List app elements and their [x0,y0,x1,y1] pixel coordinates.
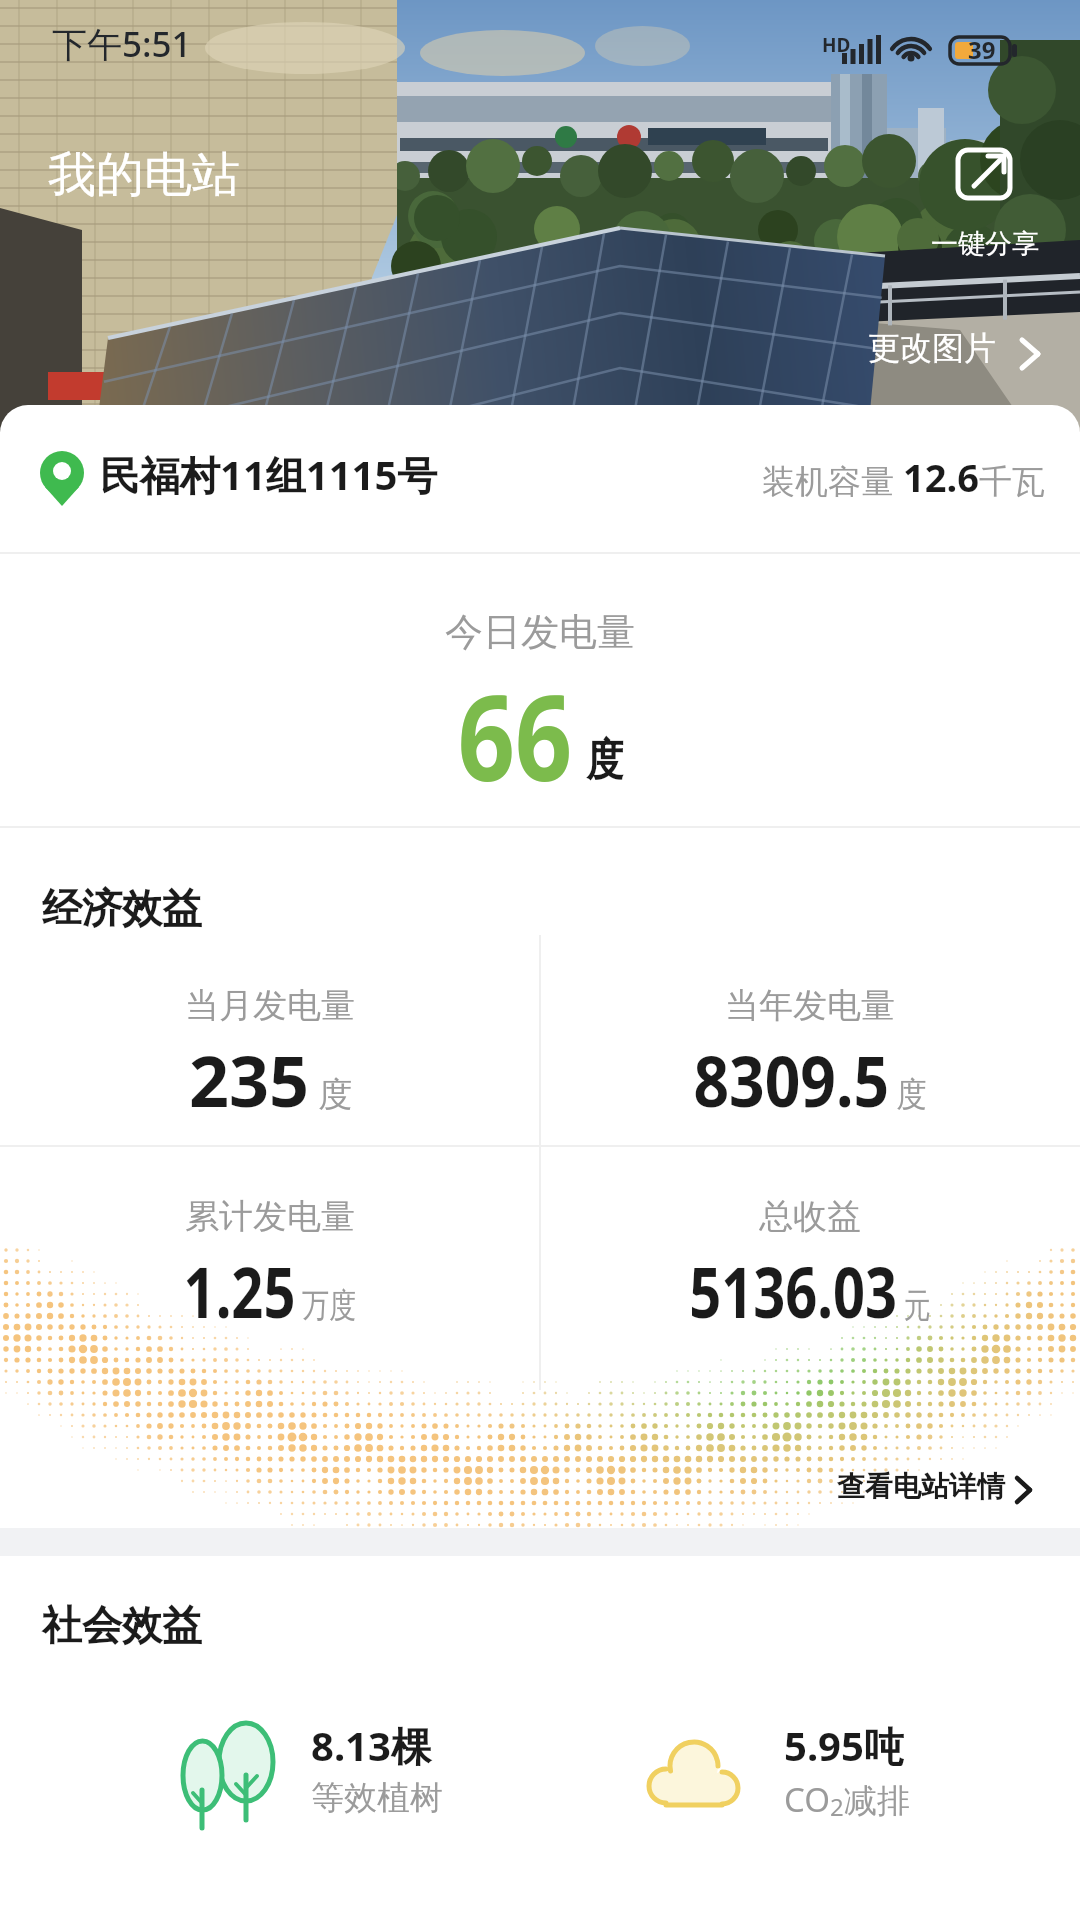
staticText: HD [822,32,851,58]
staticText: 8.13棵 [311,1718,431,1773]
staticText: 元 [904,1284,931,1327]
staticText: 8309.5 [693,1032,889,1127]
staticText: 5.95吨 [784,1718,904,1773]
button[interactable] [620,1705,1000,1835]
staticText: 千瓦 [979,461,1045,503]
staticText: 39 [968,33,996,66]
staticText: 民福村11组1115号 [100,447,438,502]
staticText: 更改图片 [868,328,996,368]
button[interactable] [855,326,1055,378]
staticText: 235 [189,1032,310,1127]
staticText: 1.25 [184,1243,296,1338]
staticText: 万度 [302,1284,356,1327]
staticText: 我的电站 [48,145,240,205]
staticText: 12.6 [903,451,979,503]
staticText: 66 [458,654,573,816]
staticText: 装机容量 [762,458,903,503]
staticText: 等效植树 [311,1777,443,1819]
staticText: 下午5:51 [52,20,192,68]
staticText: 社会效益 [42,1600,202,1650]
staticText: 今日发电量 [445,608,635,656]
staticText: 当月发电量 [185,984,355,1027]
staticText: 度 [896,1073,927,1116]
button[interactable] [810,1461,1060,1521]
staticText: 5136.03 [689,1243,897,1338]
button[interactable] [925,140,1055,270]
staticText: 度 [318,1073,352,1116]
button[interactable] [30,440,550,510]
staticText: 度 [586,733,623,788]
button[interactable] [150,1705,530,1835]
staticText: CO2减排 [784,1777,910,1823]
staticText: 一键分享 [931,227,1039,261]
staticText: 累计发电量 [185,1195,355,1238]
staticText: 当年发电量 [725,984,895,1027]
staticText: 经济效益 [42,883,202,933]
staticText: 查看电站详情 [837,1469,1005,1504]
staticText: 总收益 [759,1195,861,1238]
